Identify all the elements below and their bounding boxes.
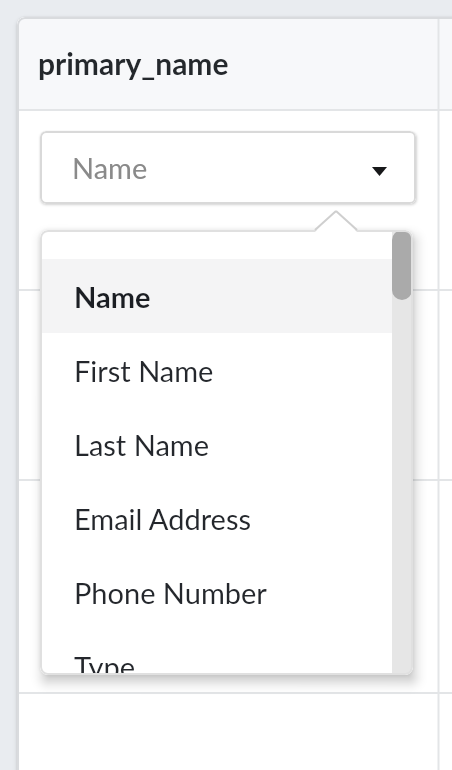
staticText: First Name (74, 353, 214, 388)
staticText: Name (74, 279, 151, 314)
staticText: Email Address (74, 501, 252, 536)
staticText: Last Name (74, 427, 209, 462)
button[interactable]: First Name (40, 333, 413, 407)
staticText: primary_name (38, 45, 229, 81)
button[interactable]: Name (40, 259, 413, 333)
staticText: Type (74, 649, 136, 675)
staticText: Name (72, 150, 148, 185)
staticText: Phone Number (74, 575, 267, 610)
button[interactable]: Last Name (40, 407, 413, 481)
button[interactable]: Phone Number (40, 555, 413, 629)
button[interactable]: Name (40, 131, 416, 204)
button[interactable]: Type (40, 629, 413, 675)
button[interactable]: Email Address (40, 481, 413, 555)
